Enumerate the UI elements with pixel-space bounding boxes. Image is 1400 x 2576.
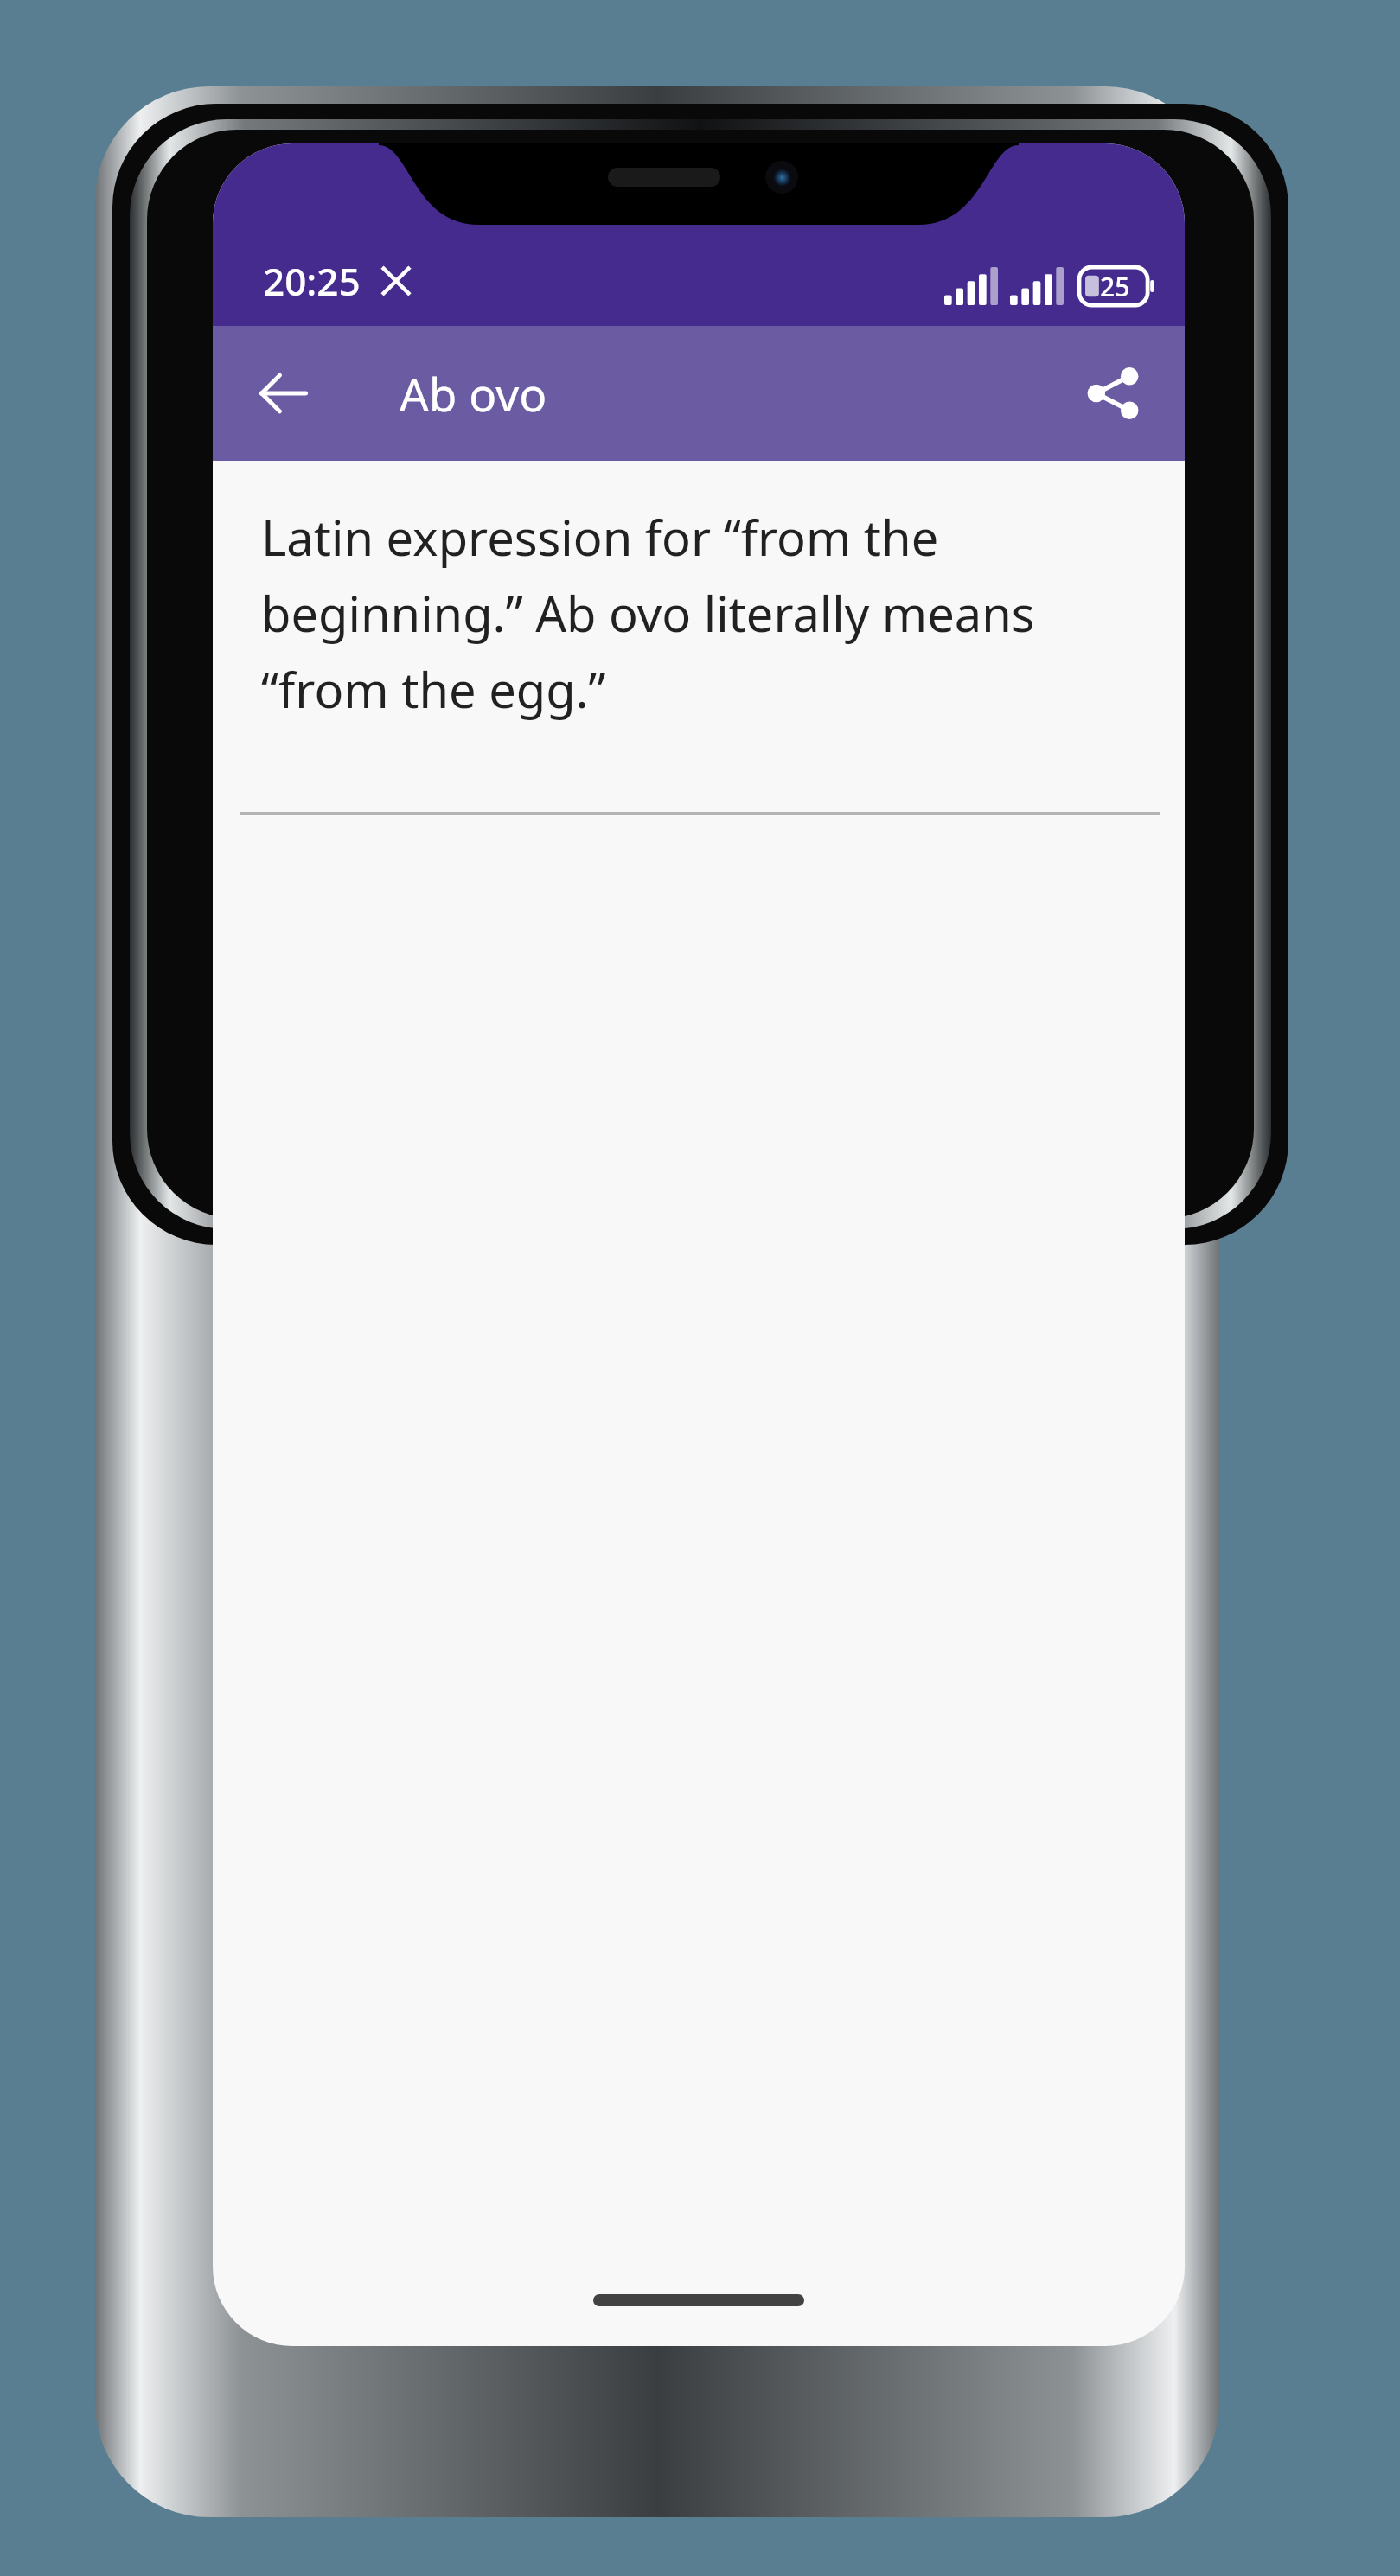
button[interactable]: Back	[235, 346, 330, 441]
staticText: 20:25	[263, 255, 361, 307]
button[interactable]: Share	[1065, 346, 1160, 441]
staticText: Ab ovo	[400, 362, 547, 424]
staticText: Latin expression for “from the beginning…	[261, 504, 1148, 722]
staticText: 25	[1100, 269, 1130, 304]
